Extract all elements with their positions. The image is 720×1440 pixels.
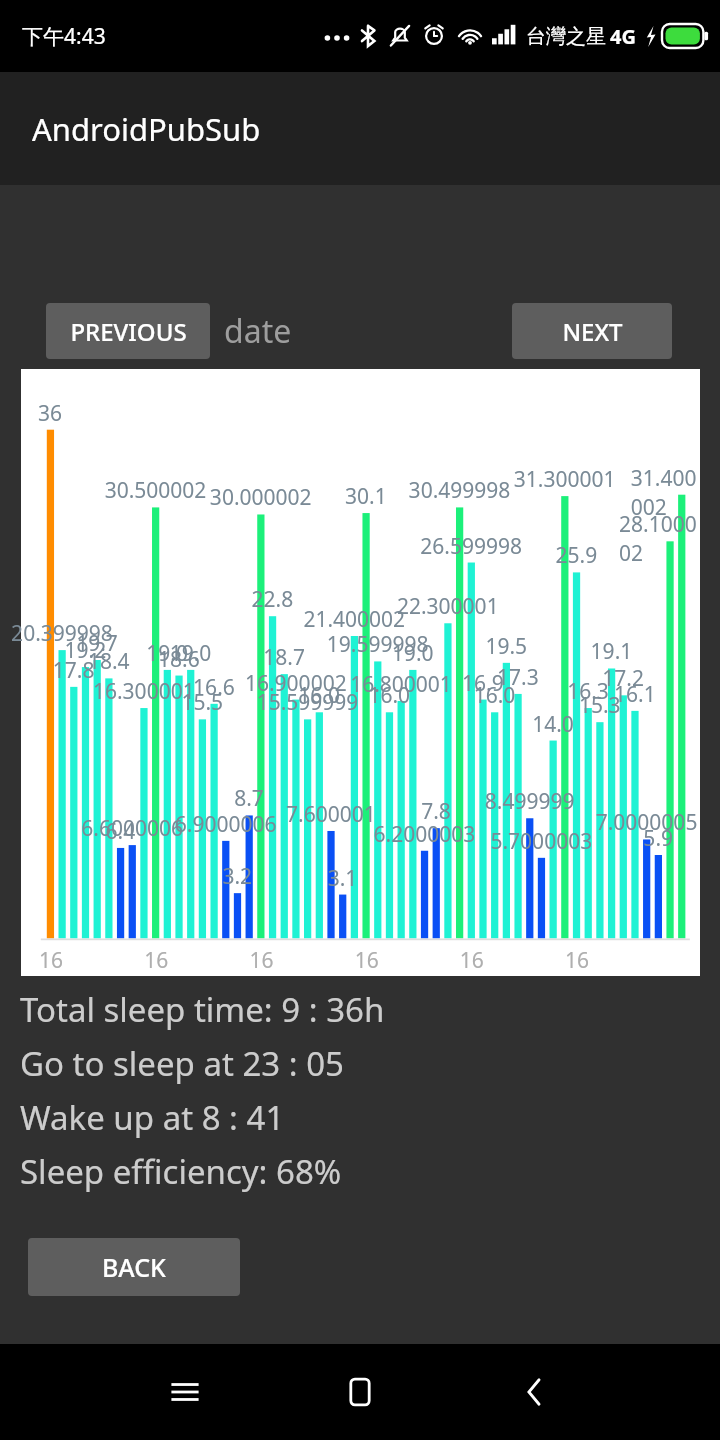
staticText: PREVIOUS <box>70 315 187 348</box>
staticText: 台灣之星 <box>526 24 606 49</box>
staticText: Total sleep time: 9 : 36h <box>20 987 385 1032</box>
staticText: 下午4:43 <box>22 22 106 51</box>
staticText: Sleep efficiency: 68% <box>20 1149 342 1194</box>
button[interactable]: BACK <box>28 1238 240 1296</box>
staticText: BACK <box>102 1250 166 1284</box>
staticText: date <box>224 309 292 353</box>
button[interactable] <box>21 369 700 976</box>
staticText: Go to sleep at 23 : 05 <box>20 1041 344 1086</box>
button[interactable]: Home <box>324 1356 396 1428</box>
staticText: Wake up at 8 : 41 <box>20 1095 285 1140</box>
button[interactable]: PREVIOUS <box>46 303 210 359</box>
staticText: 4G <box>610 23 636 50</box>
button[interactable]: Recent apps <box>149 1356 221 1428</box>
button[interactable]: Back <box>499 1356 571 1428</box>
button[interactable]: NEXT <box>512 303 672 359</box>
staticText: AndroidPubSub <box>32 108 261 150</box>
staticText: NEXT <box>562 315 623 348</box>
